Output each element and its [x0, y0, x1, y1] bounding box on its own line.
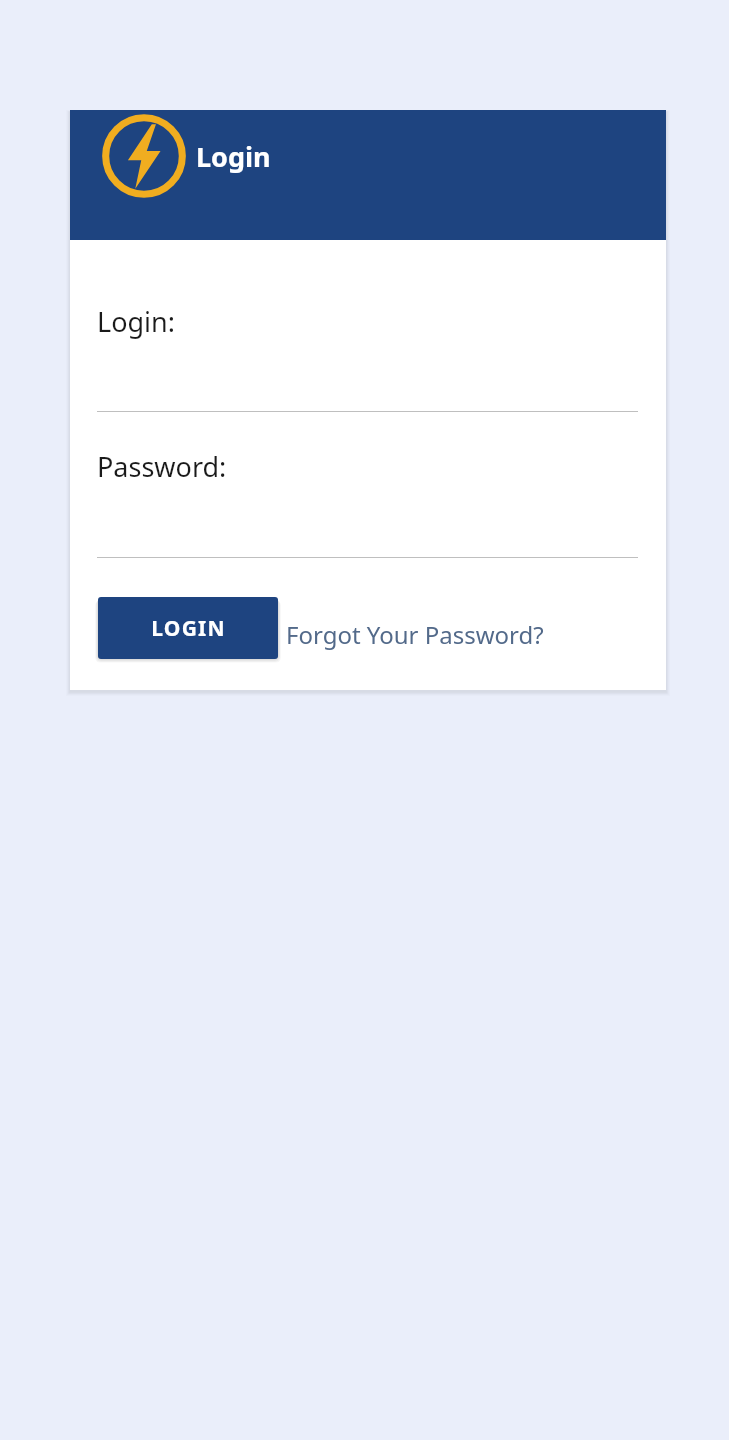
staticText: LOGIN — [151, 614, 226, 643]
staticText: Login: — [97, 303, 175, 340]
staticText: Forgot Your Password? — [286, 618, 544, 651]
staticText: Password: — [97, 448, 227, 485]
staticText: Login — [196, 138, 271, 175]
button[interactable]: Forgot Your Password? — [282, 608, 548, 661]
other: App logo — [98, 110, 190, 202]
button[interactable]: LOGIN — [98, 597, 278, 659]
